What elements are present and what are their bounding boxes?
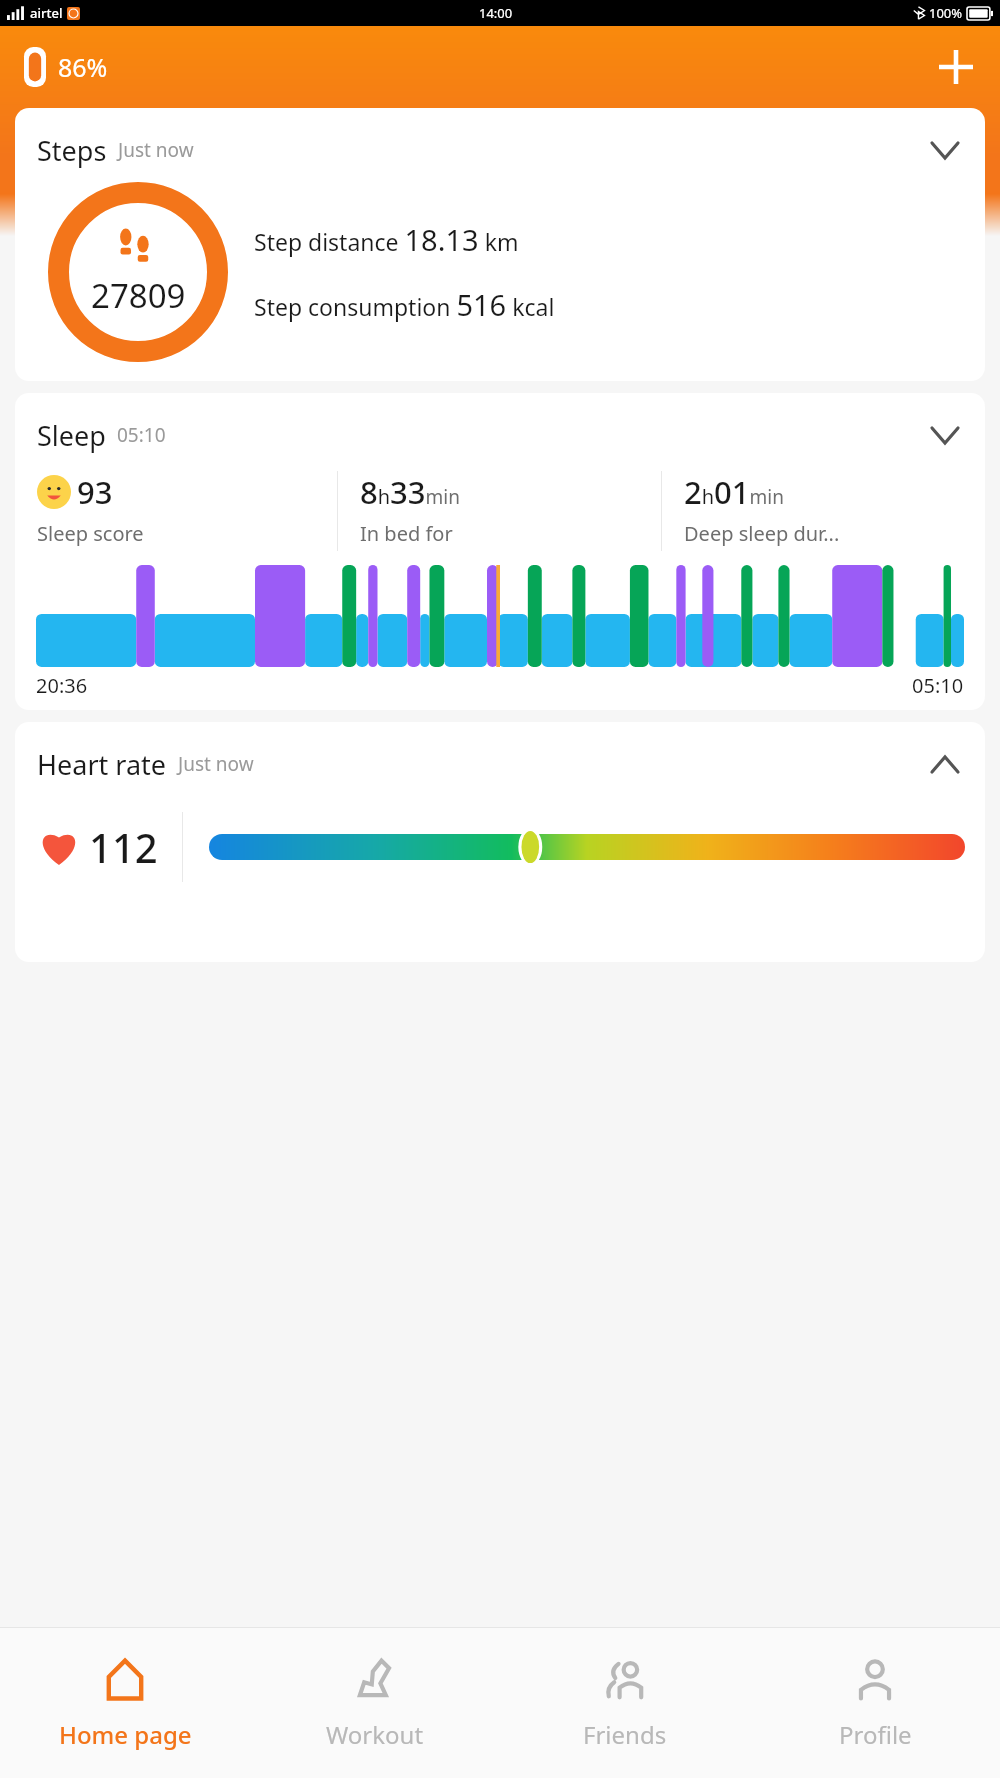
staticText: 05:10 [912, 672, 964, 699]
other: Collapse [923, 742, 967, 786]
button[interactable]: Add [930, 41, 982, 93]
button[interactable]: Friends [500, 1628, 750, 1778]
staticText: 86% [58, 50, 108, 84]
staticText: 05:10 [117, 422, 166, 448]
staticText: 27809 [91, 273, 186, 318]
button[interactable]: Heart rate [15, 722, 985, 786]
staticText: Deep sleep dur... [684, 520, 840, 547]
staticText: airtel [30, 4, 63, 22]
staticText: 2h01min [684, 471, 784, 513]
button[interactable]: Heart rate [15, 722, 985, 962]
button[interactable]: Steps [15, 108, 985, 172]
staticText: Sleep score [37, 520, 144, 547]
staticText: 100% [929, 4, 963, 22]
staticText: In bed for [360, 520, 453, 547]
button[interactable]: Sleep [15, 393, 985, 457]
button[interactable]: 86% [18, 43, 114, 91]
other: Expand [923, 413, 967, 457]
button[interactable]: Workout [250, 1628, 500, 1778]
staticText: 20:36 [36, 672, 88, 699]
button[interactable]: Sleep [15, 393, 985, 710]
staticText: Heart rate [37, 746, 167, 783]
other: Expand [923, 128, 967, 172]
staticText: Sleep [37, 417, 106, 454]
staticText: Step consumption 516 kcal [254, 285, 555, 324]
staticText: Home page [59, 1718, 192, 1751]
staticText: Just now [178, 751, 254, 777]
staticText: 14:00 [479, 4, 513, 22]
staticText: Just now [118, 137, 194, 163]
staticText: Friends [583, 1718, 667, 1751]
staticText: 112 [89, 820, 158, 874]
button[interactable]: Steps [15, 108, 985, 381]
staticText: Step distance 18.13 km [254, 220, 519, 259]
staticText: Workout [326, 1718, 424, 1751]
button[interactable]: Profile [750, 1628, 1000, 1778]
staticText: Profile [839, 1718, 912, 1751]
staticText: Steps [37, 132, 107, 169]
staticText: 8h33min [360, 471, 460, 513]
staticText: 93 [77, 471, 113, 513]
button[interactable]: Home page [0, 1628, 250, 1778]
